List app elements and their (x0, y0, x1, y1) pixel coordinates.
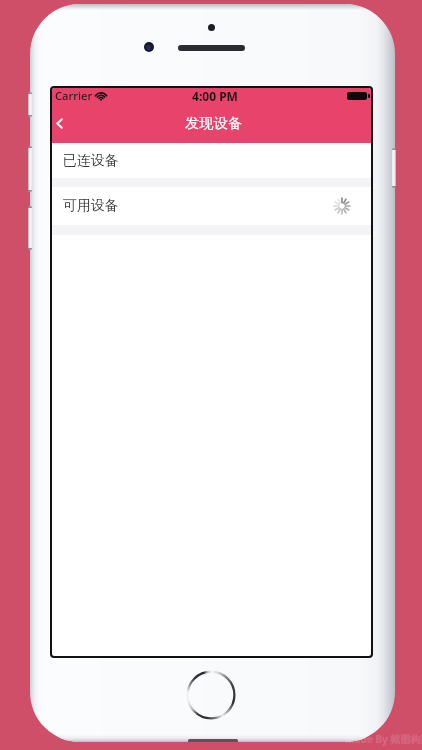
staticText: Carrier (55, 88, 93, 103)
staticText: 已连设备 (63, 152, 119, 170)
staticText: 4:00 PM (192, 88, 238, 103)
staticText: Made By 截图构建 (345, 732, 422, 746)
button[interactable]: Home (186, 670, 236, 720)
button[interactable]: 可用设备 (52, 187, 371, 225)
button[interactable]: 已连设备 (52, 143, 371, 178)
button[interactable]: Back (52, 103, 78, 143)
staticText: 可用设备 (63, 197, 119, 215)
staticText: 发现设备 (185, 114, 243, 132)
